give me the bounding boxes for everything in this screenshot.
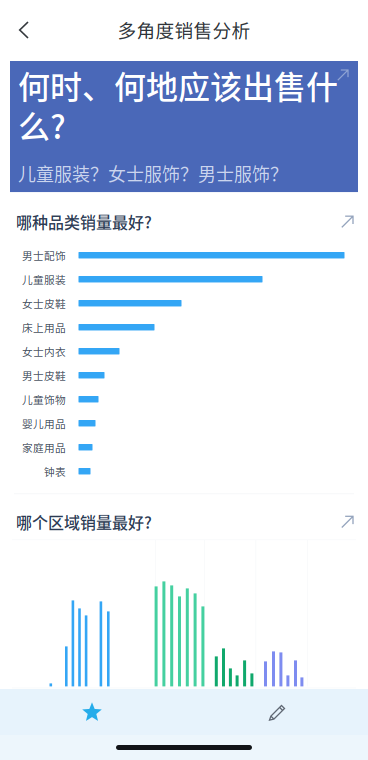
staticText: 男士皮鞋 bbox=[22, 367, 66, 383]
staticText: 么? bbox=[18, 102, 66, 148]
staticText: 女士内衣 bbox=[22, 343, 66, 359]
staticText: 钟表 bbox=[44, 463, 66, 479]
staticText: 何时、何地应该出售什 bbox=[18, 62, 338, 108]
staticText: 女士皮鞋 bbox=[22, 295, 66, 311]
staticText: 哪种品类销量最好? bbox=[16, 210, 152, 233]
staticText: 床上用品 bbox=[22, 319, 66, 335]
staticText: 多角度销售分析 bbox=[117, 16, 250, 43]
button[interactable]: 哪个区域销量最好? bbox=[0, 494, 368, 539]
button[interactable]: Edit bbox=[247, 689, 307, 735]
button[interactable]: Favorites bbox=[62, 689, 122, 735]
button[interactable]: Back bbox=[4, 8, 44, 52]
button[interactable]: 何时、何地应该出售什 bbox=[10, 61, 358, 192]
staticText: 婴儿用品 bbox=[22, 415, 66, 431]
staticText: 男士配饰 bbox=[22, 247, 66, 263]
staticText: 儿童服装 bbox=[22, 271, 66, 287]
button[interactable]: 哪种品类销量最好? bbox=[0, 192, 368, 243]
staticText: 儿童饰物 bbox=[22, 391, 66, 407]
staticText: 家庭用品 bbox=[22, 439, 66, 455]
staticText: 儿童服装？女士服饰？男士服饰？ bbox=[18, 160, 288, 186]
staticText: 哪个区域销量最好? bbox=[16, 510, 152, 533]
